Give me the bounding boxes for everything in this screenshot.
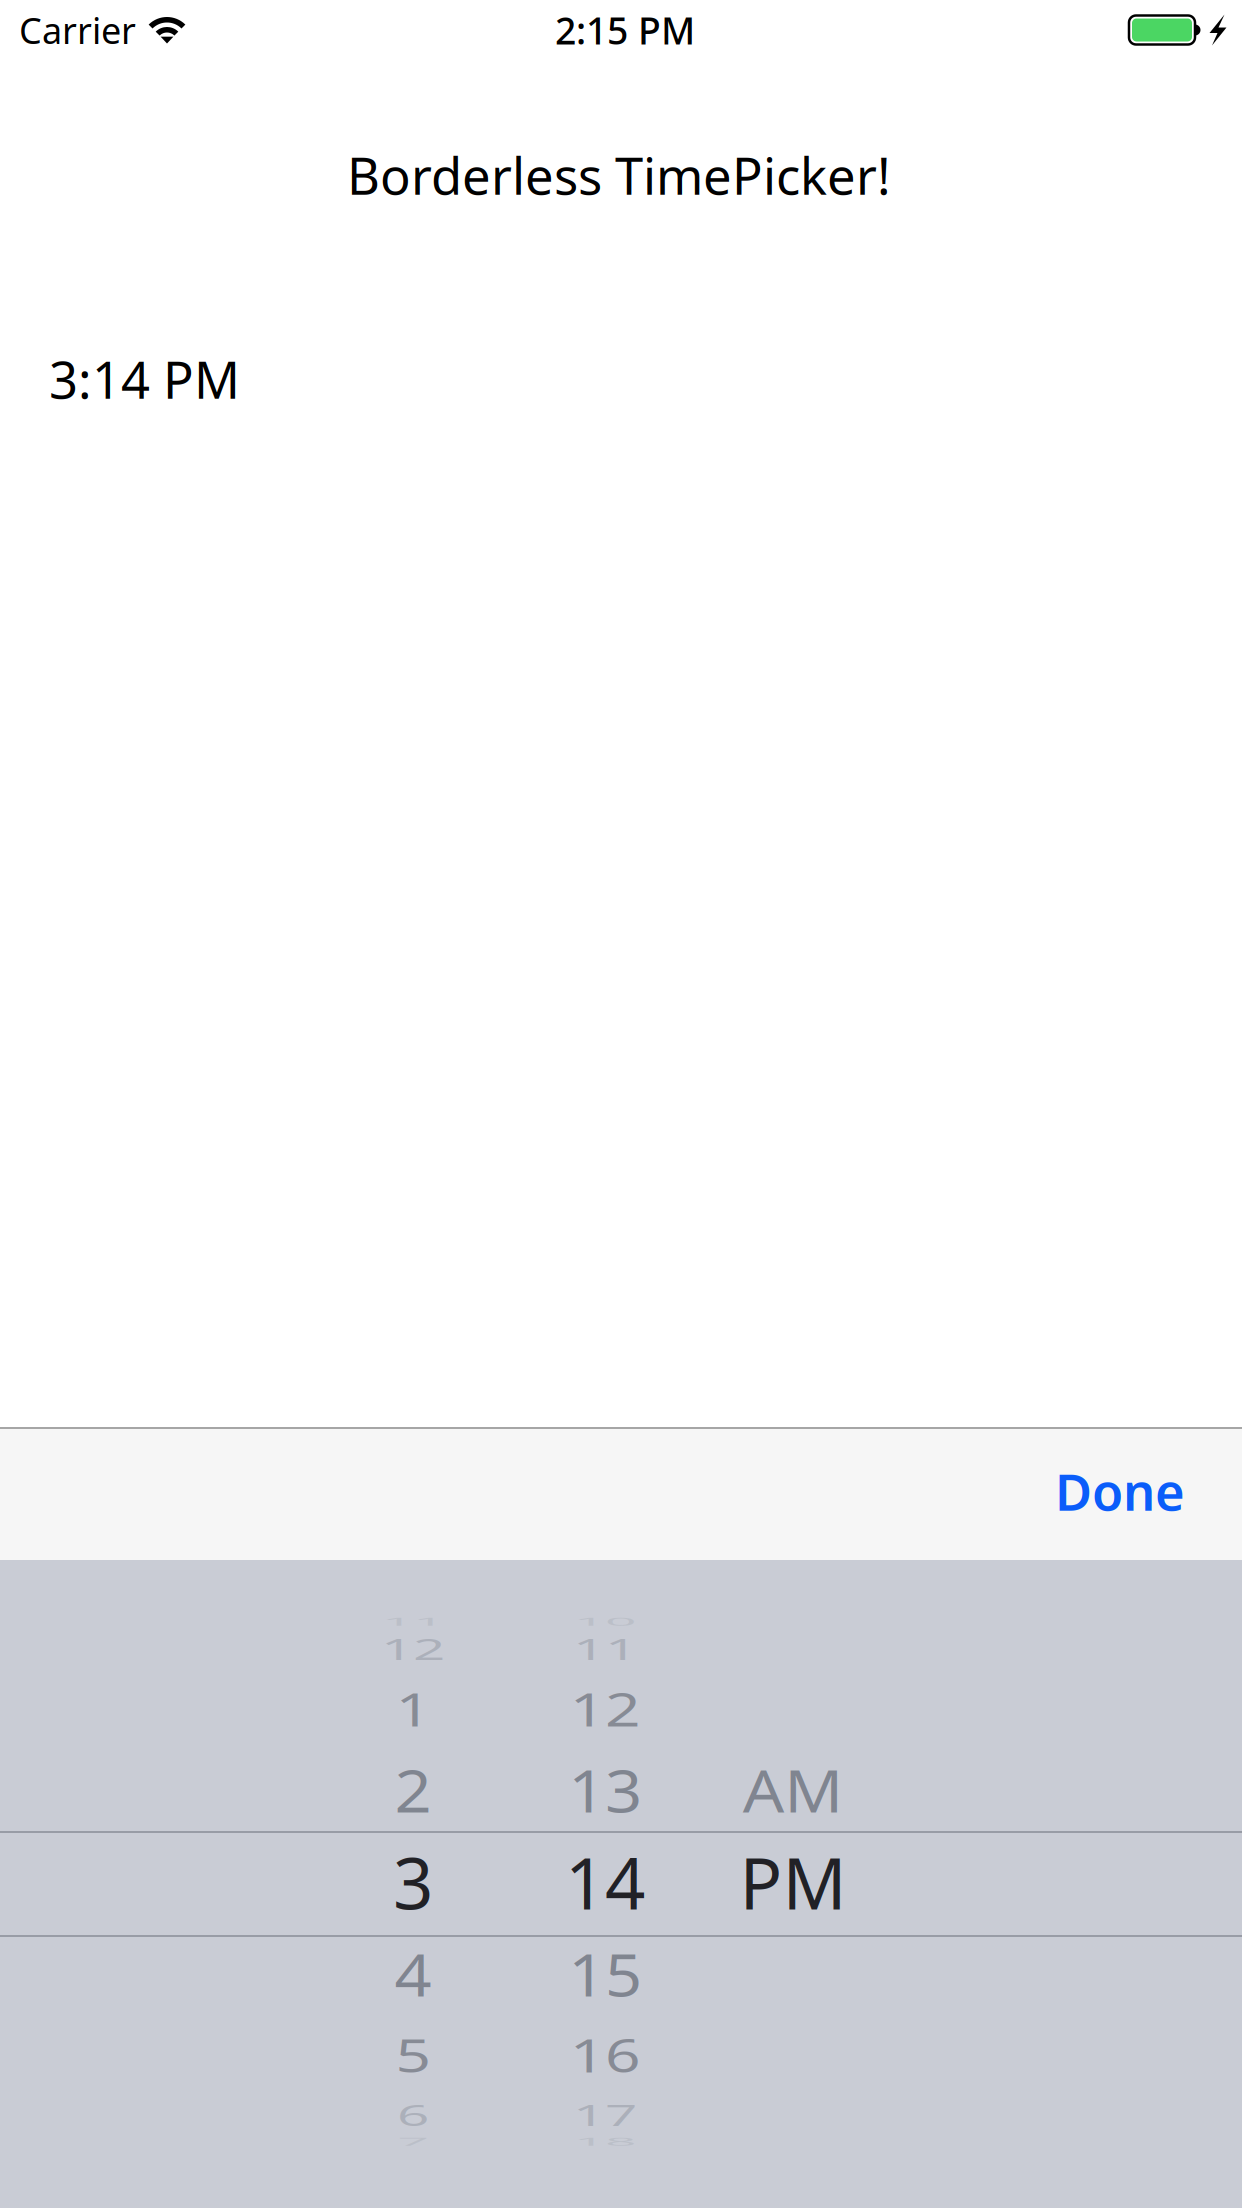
staticText: 6 xyxy=(393,2068,433,2162)
staticText: 9 xyxy=(393,1556,433,1650)
staticText: 20 xyxy=(565,2114,645,2208)
staticText: Carrier xyxy=(19,6,136,54)
button[interactable]: Done xyxy=(1035,1441,1205,1541)
staticText: 16 xyxy=(565,2008,645,2102)
staticText: Borderless TimePicker! xyxy=(347,141,891,209)
staticText: 5 xyxy=(393,2008,433,2102)
staticText: 08 xyxy=(565,1556,645,1650)
staticText: 10 xyxy=(565,1575,645,1669)
staticText: 9 xyxy=(393,2114,433,2208)
staticText: 10 xyxy=(373,1556,453,1650)
staticText: 8 xyxy=(393,2114,433,2208)
staticText: 17 xyxy=(565,2068,645,2162)
button[interactable]: AM or PM, PM xyxy=(698,1560,888,2208)
staticText: 12 xyxy=(373,1602,453,1696)
staticText: AM xyxy=(738,1743,847,1837)
staticText: 07 xyxy=(565,1556,645,1650)
staticText: 09 xyxy=(565,1556,645,1650)
staticText: 2 xyxy=(393,1743,433,1837)
staticText: 2:15 PM xyxy=(555,5,695,55)
staticText: 11 xyxy=(565,1602,645,1696)
staticText: 11 xyxy=(373,1575,453,1669)
button[interactable]: Minutes, 14 xyxy=(510,1560,700,2208)
staticText: 14 xyxy=(565,1835,645,1929)
staticText: 3 xyxy=(393,1835,433,1929)
staticText: Done xyxy=(1055,1457,1185,1525)
staticText: PM xyxy=(739,1835,846,1929)
staticText: 8 xyxy=(393,1556,433,1650)
staticText: 7 xyxy=(393,2095,433,2189)
button[interactable]: Hour, 3 xyxy=(318,1560,508,2208)
staticText: 3:14 PM xyxy=(49,345,240,413)
staticText: 18 xyxy=(565,2095,645,2189)
staticText: 1 xyxy=(393,1662,433,1756)
staticText: 13 xyxy=(565,1743,645,1837)
staticText: 4 xyxy=(393,1927,433,2021)
staticText: 19 xyxy=(565,2114,645,2208)
staticText: 12 xyxy=(565,1662,645,1756)
staticText: 15 xyxy=(565,1927,645,2021)
